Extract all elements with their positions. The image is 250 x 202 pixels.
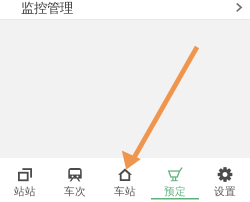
button[interactable]: 站站 <box>0 158 50 202</box>
staticText: 设置 <box>214 185 236 198</box>
button[interactable]: 设置 <box>200 158 250 202</box>
staticText: 车次 <box>64 185 86 198</box>
button[interactable]: More <box>236 2 250 16</box>
button[interactable]: 车次 <box>50 158 100 202</box>
button[interactable]: 预定 <box>150 158 200 202</box>
staticText: 监控管理 <box>21 0 73 16</box>
staticText: 车站 <box>114 185 136 198</box>
button[interactable]: 车站 <box>100 158 150 202</box>
staticText: 站站 <box>14 185 36 198</box>
staticText: 预定 <box>164 185 186 198</box>
